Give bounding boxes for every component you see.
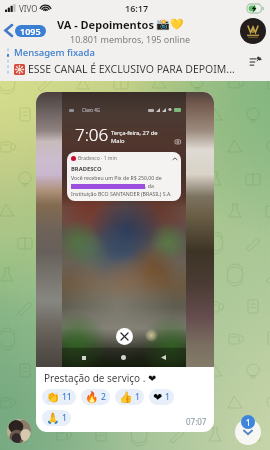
staticText: 🔥	[85, 391, 99, 404]
staticText: VIVO	[19, 3, 38, 14]
button[interactable]: 🙏	[42, 410, 71, 426]
staticText: ❤️	[153, 391, 163, 404]
button[interactable]: 👍	[115, 389, 144, 405]
staticText: 07:07	[186, 416, 207, 427]
staticText: Mensagem fixada	[14, 46, 95, 59]
button[interactable]: Pinned messages list	[246, 52, 264, 70]
staticText: Maio	[111, 137, 125, 145]
button[interactable]: Scroll to bottom	[235, 419, 261, 445]
button[interactable]: Close	[116, 328, 133, 345]
button[interactable]: ❤️	[149, 389, 174, 405]
button[interactable]: Back	[0, 22, 48, 39]
staticText: , da	[145, 182, 154, 189]
staticText: 📸💛	[156, 18, 184, 31]
staticText: 1	[62, 412, 67, 424]
staticText: 1	[246, 417, 251, 428]
staticText: 7:06	[75, 123, 109, 146]
staticText: 1	[165, 391, 170, 403]
staticText: 1095	[20, 25, 41, 37]
button[interactable]: Channel profile photo	[240, 18, 266, 44]
staticText: Prestação de serviço . ❤️	[44, 371, 157, 385]
staticText: BRADESCO	[71, 165, 102, 173]
staticText: Bradesco · 1 min	[78, 155, 117, 162]
staticText: Instituição BCO SANTANDER (BRASIL) S.A.	[71, 190, 172, 197]
button[interactable]: 🔥	[81, 389, 110, 405]
staticText: Claro 4G	[82, 107, 101, 113]
staticText: 1	[135, 391, 140, 403]
button[interactable]: 👏	[42, 389, 76, 405]
staticText: 2	[101, 391, 106, 403]
staticText: 👏	[46, 391, 60, 404]
staticText: 10.801 membros, 195 online	[70, 33, 191, 45]
staticText: VA - Depoimentos	[57, 17, 154, 32]
staticText: Você recebeu um Pix de R$ 250,00 de	[71, 174, 162, 181]
staticText: ESSE CANAL É EXCLUSIVO PARA DEPOIM...	[28, 62, 235, 76]
staticText: 👍	[119, 391, 133, 404]
staticText: 🙏	[46, 412, 60, 425]
staticText: 11	[62, 391, 72, 403]
button[interactable]: Mensagem fixada	[0, 45, 270, 81]
staticText: Terça-feira, 27 de	[111, 129, 158, 137]
staticText: 16:17	[125, 2, 149, 14]
